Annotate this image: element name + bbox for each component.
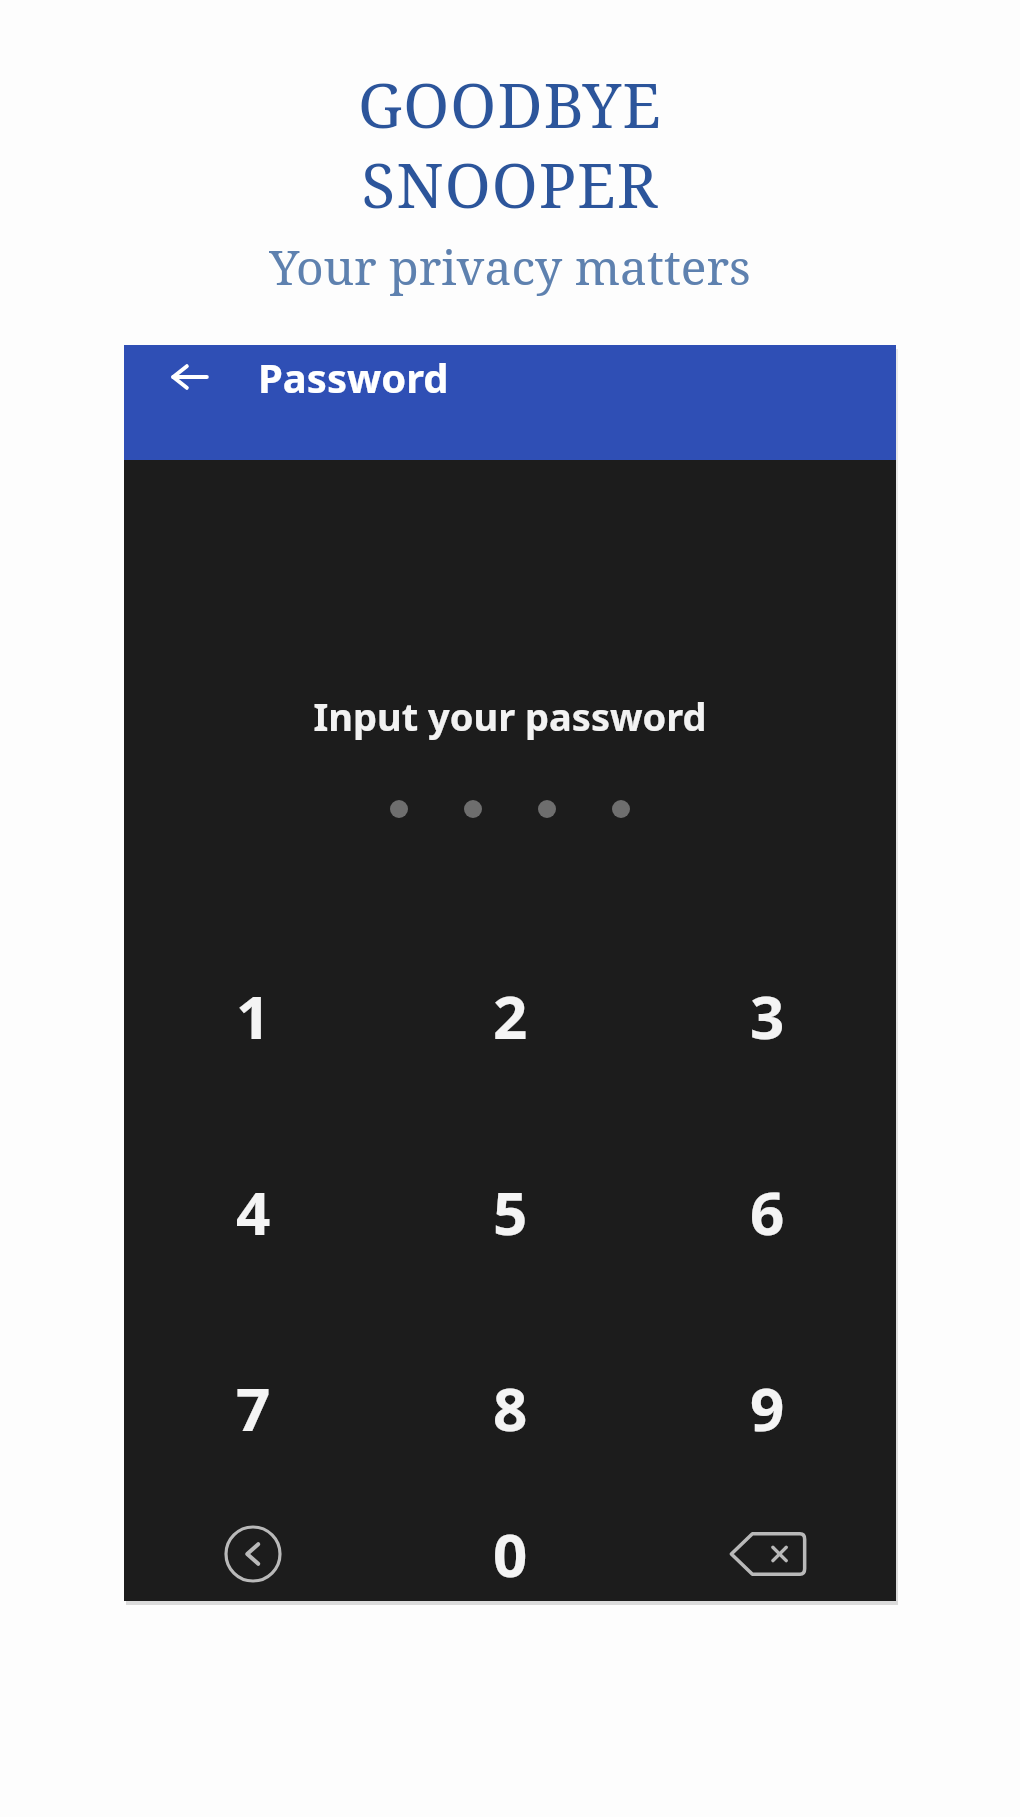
button[interactable]: Back [158,345,222,409]
button[interactable]: 6 [639,1114,896,1310]
staticText: 5 [493,1171,528,1253]
button[interactable]: Previous [124,1506,382,1601]
button[interactable]: 3 [639,918,896,1114]
button[interactable]: 4 [124,1114,382,1310]
staticText: 3 [750,975,785,1057]
button[interactable]: 1 [124,918,382,1114]
staticText: 4 [236,1171,271,1253]
staticText: Your privacy matters [0,234,1020,299]
staticText: 9 [750,1367,785,1449]
staticText: Password [258,350,449,404]
button[interactable]: 2 [382,918,639,1114]
button[interactable]: 9 [639,1310,896,1506]
button[interactable]: 8 [382,1310,639,1506]
staticText: 0 [493,1513,528,1595]
staticText: 2 [493,975,528,1057]
button[interactable]: 0 [382,1506,639,1601]
staticText: 1 [236,975,271,1057]
staticText: 6 [750,1171,785,1253]
staticText: 8 [493,1367,528,1449]
button[interactable]: 7 [124,1310,382,1506]
staticText: Input your password [124,690,896,742]
staticText: 7 [236,1367,271,1449]
button[interactable]: 5 [382,1114,639,1310]
staticText: GOODBYE SNOOPER [0,62,1020,226]
button[interactable]: Backspace [639,1506,896,1601]
